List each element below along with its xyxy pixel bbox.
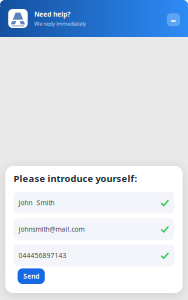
- button[interactable]: johnsmith@mail.com: [14, 218, 174, 240]
- staticText: We reply immediately: [34, 20, 86, 27]
- button[interactable]: Send: [18, 268, 45, 284]
- staticText: John Smith: [19, 198, 55, 207]
- staticText: 044456897143: [19, 251, 67, 260]
- button[interactable]: John Smith: [14, 192, 174, 214]
- button[interactable]: 044456897143: [14, 245, 174, 266]
- staticText: Send: [23, 272, 39, 281]
- button[interactable]: Minimize chat: [167, 11, 180, 26]
- staticText: Please introduce yourself:: [14, 172, 138, 185]
- staticText: Need help?: [34, 10, 70, 19]
- staticText: johnsmith@mail.com: [19, 225, 85, 233]
